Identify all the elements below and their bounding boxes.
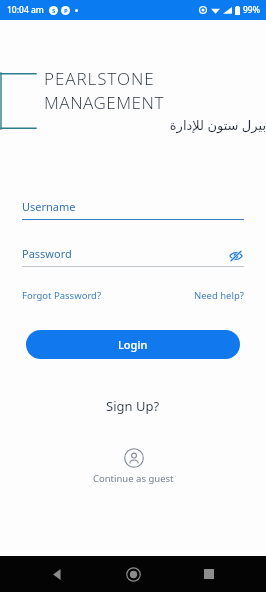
staticText: PEARLSTONE — [44, 67, 155, 90]
staticText: Forgot Password? — [22, 289, 102, 302]
staticText: Password — [22, 246, 72, 261]
staticText: 10:04 am — [7, 4, 44, 16]
staticText: MANAGEMENT — [44, 91, 164, 114]
button[interactable]: Back — [38, 556, 76, 592]
staticText: Sign Up? — [106, 397, 160, 415]
button[interactable]: Need help? — [194, 289, 244, 302]
button[interactable]: Recent apps — [190, 556, 228, 592]
button[interactable]: Home — [114, 556, 152, 592]
button[interactable]: Sign Up? — [102, 393, 164, 419]
button[interactable]: Username — [22, 194, 244, 220]
staticText: Login — [118, 337, 148, 352]
button[interactable]: Login — [26, 330, 240, 359]
staticText: بيرل ستون للإدارة — [44, 116, 266, 134]
button[interactable]: Continue as guest — [83, 445, 184, 488]
staticText: S — [52, 7, 56, 15]
staticText: Username — [22, 199, 76, 214]
button[interactable]: Password — [22, 241, 244, 267]
button[interactable]: Forgot Password? — [22, 289, 102, 302]
staticText: P — [64, 7, 68, 15]
staticText: 99% — [243, 4, 260, 16]
button[interactable]: Show password — [228, 248, 244, 264]
staticText: Need help? — [194, 289, 244, 302]
staticText: Continue as guest — [93, 472, 174, 485]
